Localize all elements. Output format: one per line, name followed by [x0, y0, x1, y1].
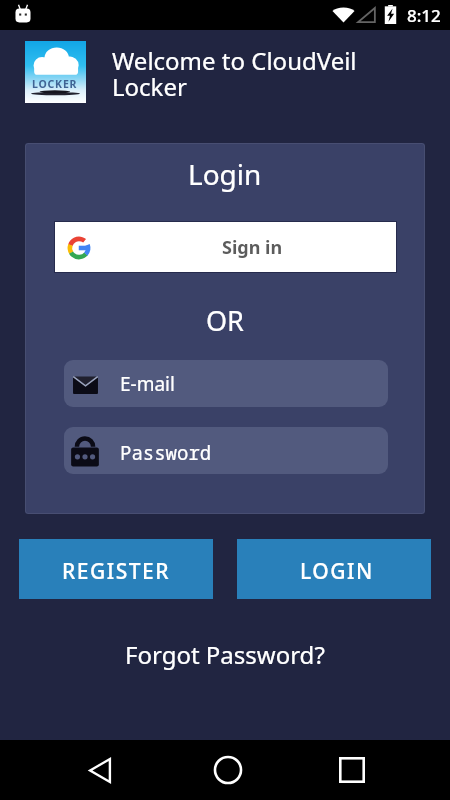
staticText: E-mail: [120, 371, 175, 397]
staticText: Forgot Password?: [125, 638, 325, 671]
button[interactable]: Recents: [322, 740, 382, 800]
staticText: Login: [188, 155, 262, 193]
staticText: OR: [206, 302, 244, 339]
button[interactable]: Sign in: [55, 222, 396, 272]
staticText: LOGIN: [300, 557, 374, 586]
button[interactable]: LOGIN: [237, 539, 431, 599]
staticText: Welcome to CloudVeil Locker: [112, 44, 377, 103]
staticText: Sign in: [222, 235, 283, 260]
staticText: REGISTER: [62, 557, 170, 586]
button[interactable]: REGISTER: [19, 539, 213, 599]
button[interactable]: E-mail: [64, 360, 388, 407]
staticText: 8:12: [407, 4, 441, 27]
button[interactable]: Back: [70, 740, 130, 800]
staticText: Password: [120, 440, 212, 466]
button[interactable]: Password: [64, 427, 388, 474]
button[interactable]: Forgot Password?: [0, 634, 450, 674]
button[interactable]: Home: [198, 740, 258, 800]
staticText: LOCKER: [32, 77, 78, 91]
